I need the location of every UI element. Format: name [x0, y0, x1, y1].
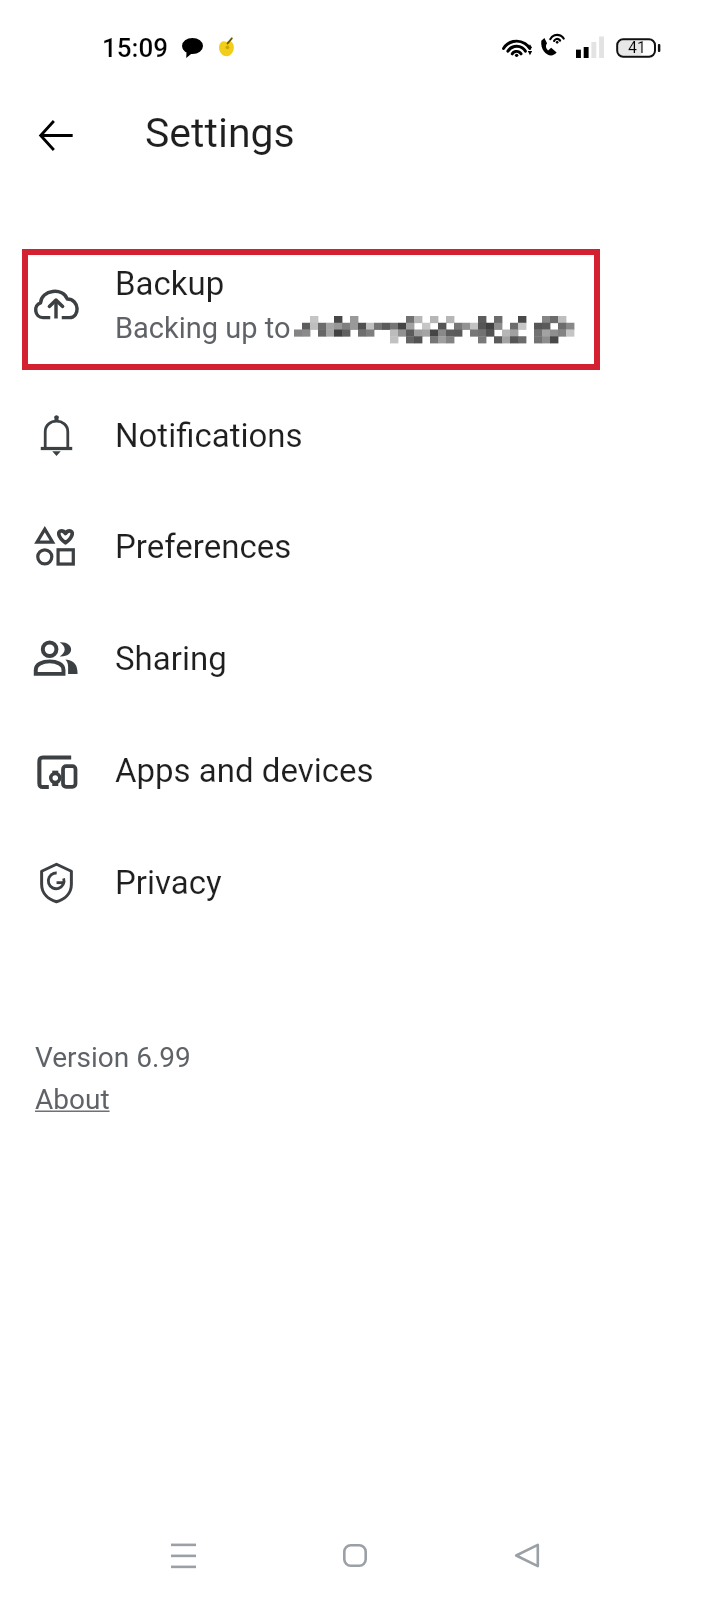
staticText: Preferences — [115, 527, 292, 566]
staticText: Apps and devices — [115, 751, 374, 790]
button[interactable]: Recent apps — [159, 1531, 207, 1579]
staticText: Privacy — [115, 863, 222, 902]
staticText: Backup — [115, 264, 225, 303]
button[interactable]: About — [35, 1083, 110, 1116]
button[interactable]: Home — [331, 1531, 379, 1579]
staticText: 41 — [628, 38, 646, 57]
staticText: Notifications — [115, 416, 303, 455]
button[interactable]: Sharing — [0, 602, 720, 714]
staticText: Sharing — [115, 639, 227, 678]
staticText: Backing up to — [115, 311, 291, 345]
button[interactable]: Notifications — [0, 379, 720, 491]
button[interactable]: Back — [28, 107, 84, 163]
staticText: Settings — [145, 109, 295, 157]
button[interactable]: Preferences — [0, 490, 720, 602]
staticText: 15:09 — [102, 33, 169, 63]
button[interactable]: Backup — [0, 249, 720, 370]
staticText: Version 6.99 — [35, 1041, 191, 1074]
button[interactable]: Privacy — [0, 826, 720, 938]
button[interactable]: Back — [503, 1531, 551, 1579]
staticText: About — [35, 1083, 110, 1116]
button[interactable]: Apps and devices — [0, 714, 720, 826]
